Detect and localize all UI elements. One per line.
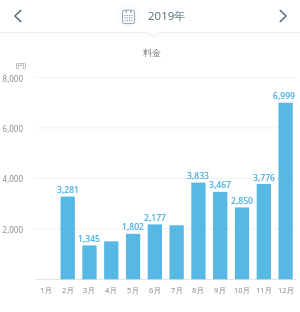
staticText: 2,850 xyxy=(222,195,262,207)
staticText: 料金 xyxy=(122,47,182,58)
button[interactable]: 11月 3,776円 xyxy=(253,60,275,279)
button[interactable]: 3月 1,345円 xyxy=(79,60,101,279)
staticText: 2,000 xyxy=(0,224,23,235)
button[interactable]: 12月 6,999円 xyxy=(275,60,297,279)
staticText: 7月 xyxy=(162,285,192,295)
staticText: 9月 xyxy=(205,285,235,295)
staticText: 2,177 xyxy=(135,212,175,224)
button[interactable]: 5月 1,802円 xyxy=(122,60,144,279)
staticText: 3,467 xyxy=(200,179,240,191)
staticText: 1,802 xyxy=(113,221,153,233)
staticText: 4月 xyxy=(96,285,126,295)
staticText: 6,000 xyxy=(0,123,23,134)
staticText: 5月 xyxy=(118,285,148,295)
staticText: 2019年 xyxy=(148,8,186,24)
button[interactable]: 7月 2,141円 xyxy=(166,60,188,279)
button[interactable]: 8月 3,833円 xyxy=(188,60,210,279)
staticText: 3,833 xyxy=(178,170,218,182)
button[interactable]: 4月 1,506円 xyxy=(100,60,122,279)
button[interactable]: 9月 3,467円 xyxy=(209,60,231,279)
staticText: (円) xyxy=(1,61,41,70)
staticText: 2月 xyxy=(53,285,83,295)
staticText: 3,776 xyxy=(244,172,284,184)
button[interactable]: 2019年 xyxy=(117,5,186,27)
staticText: 4,000 xyxy=(0,173,23,184)
staticText: 3月 xyxy=(74,285,104,295)
button[interactable]: 2月 3,281円 xyxy=(57,60,79,279)
button[interactable]: 6月 2,177円 xyxy=(144,60,166,279)
staticText: 8,000 xyxy=(0,73,23,84)
staticText: 10月 xyxy=(227,285,257,295)
button[interactable]: Next year xyxy=(269,2,297,30)
staticText: 8月 xyxy=(183,285,213,295)
staticText: 6,999 xyxy=(264,90,300,102)
button[interactable]: 10月 2,850円 xyxy=(231,60,253,279)
button[interactable]: Previous year xyxy=(4,2,32,30)
staticText: 12月 xyxy=(271,285,300,295)
staticText: 1月 xyxy=(31,285,61,295)
staticText: 11月 xyxy=(249,285,279,295)
staticText: 3,281 xyxy=(48,184,88,196)
staticText: 1,345 xyxy=(69,233,109,245)
staticText: 6月 xyxy=(140,285,170,295)
